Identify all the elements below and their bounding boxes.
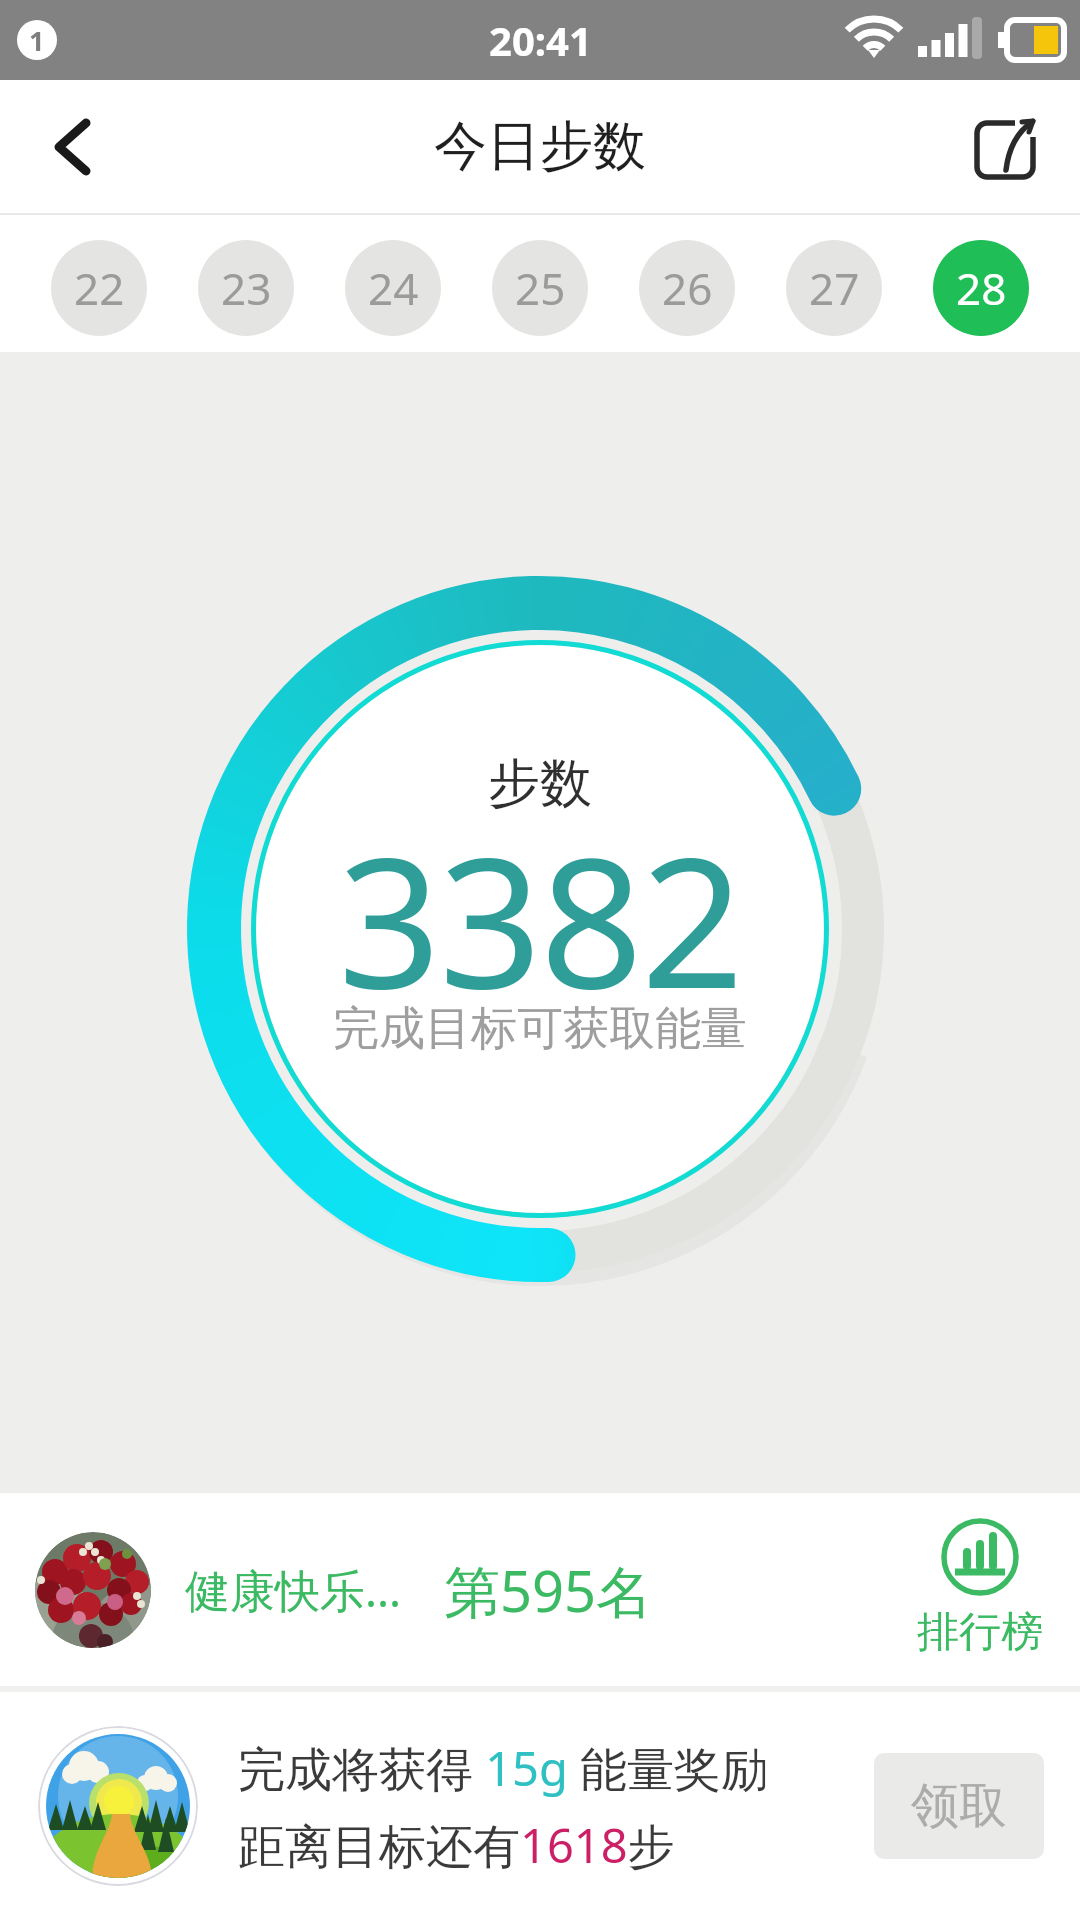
button[interactable]: 24 bbox=[345, 240, 441, 336]
button[interactable]: 28 bbox=[933, 240, 1029, 336]
staticText: 28 bbox=[956, 258, 1007, 318]
button[interactable]: 23 bbox=[198, 240, 294, 336]
staticText: 第595名 bbox=[444, 1552, 653, 1628]
button[interactable]: 完成将获得 15g 能量奖励 bbox=[0, 1692, 1080, 1920]
staticText: 25 bbox=[515, 258, 566, 318]
staticText: 26 bbox=[662, 258, 713, 318]
staticText: 23 bbox=[221, 258, 272, 318]
button[interactable]: 25 bbox=[492, 240, 588, 336]
staticText: 3382 bbox=[338, 796, 742, 1041]
staticText: 步数 bbox=[488, 751, 592, 817]
button[interactable]: 26 bbox=[639, 240, 735, 336]
button[interactable] bbox=[974, 114, 1040, 180]
staticText: 排行榜 bbox=[917, 1606, 1043, 1659]
button[interactable]: 领取 bbox=[874, 1753, 1044, 1859]
staticText: 领取 bbox=[911, 1776, 1007, 1836]
staticText: 完成目标可获取能量 bbox=[333, 1000, 747, 1058]
button[interactable]: 27 bbox=[786, 240, 882, 336]
staticText: 健康快乐... bbox=[185, 1559, 402, 1620]
staticText: 距离目标还有1618步 bbox=[238, 1813, 675, 1877]
staticText: 22 bbox=[74, 258, 125, 318]
button[interactable] bbox=[40, 115, 104, 179]
staticText: 27 bbox=[809, 258, 860, 318]
staticText: 完成将获得 15g 能量奖励 bbox=[238, 1736, 769, 1800]
button[interactable]: 22 bbox=[51, 240, 147, 336]
staticText: 24 bbox=[368, 258, 419, 318]
staticText: 今日步数 bbox=[434, 113, 646, 180]
staticText: 20:41 bbox=[489, 13, 592, 67]
button[interactable]: 健康快乐... bbox=[0, 1493, 1080, 1686]
staticText: 1 bbox=[29, 22, 45, 59]
